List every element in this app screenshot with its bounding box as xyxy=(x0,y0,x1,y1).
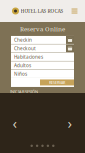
button[interactable]: Check in xyxy=(11,36,74,44)
button[interactable]: Menu xyxy=(70,6,85,15)
button[interactable]: Check out xyxy=(11,44,74,52)
staticText: HOTEL LAS ROCAS xyxy=(20,8,63,14)
staticText: Check out xyxy=(14,45,36,52)
staticText: › xyxy=(67,113,72,133)
button[interactable]: Niños xyxy=(11,70,74,78)
button[interactable]: Previous photo xyxy=(8,113,22,133)
button[interactable]: Adultos xyxy=(11,61,74,69)
staticText: INICIAR SESIÓN xyxy=(10,89,38,94)
staticText: ‹ xyxy=(12,113,17,133)
button[interactable]: HOTEL LAS ROCAS xyxy=(0,7,63,14)
staticText: Adultos xyxy=(14,62,31,69)
button[interactable]: INICIAR SESIÓN xyxy=(10,89,38,94)
button[interactable]: Habitaciones xyxy=(11,53,74,61)
staticText: Reserva Online xyxy=(20,25,65,33)
staticText: Habitaciones xyxy=(14,54,43,60)
button[interactable]: Next photo xyxy=(63,113,77,133)
staticText: Check in xyxy=(14,37,32,43)
staticText: Niños xyxy=(14,71,27,77)
staticText: RESERVAR xyxy=(49,80,65,85)
button[interactable]: RESERVAR xyxy=(40,79,74,85)
